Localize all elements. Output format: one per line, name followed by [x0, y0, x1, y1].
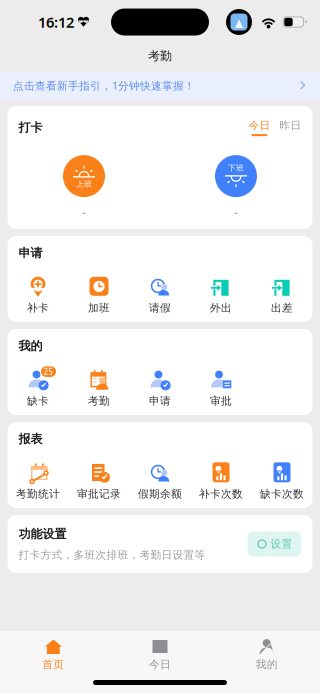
- staticText: 补卡: [27, 301, 49, 314]
- button[interactable]: 审批: [190, 367, 251, 407]
- button[interactable]: 申请: [129, 367, 190, 407]
- button[interactable]: 我的: [213, 638, 320, 671]
- button[interactable]: 昨日: [270, 119, 301, 136]
- button[interactable]: 补卡次数: [190, 460, 251, 500]
- button[interactable]: 缺卡次数: [251, 460, 312, 500]
- staticText: 请假: [149, 301, 171, 314]
- button[interactable]: 审批记录: [68, 460, 129, 500]
- button[interactable]: 考勤: [68, 367, 129, 407]
- staticText: 打卡方式，多班次排班，考勤日设置等: [18, 548, 205, 561]
- staticText: 外出: [210, 301, 232, 314]
- staticText: 考勤: [148, 49, 172, 63]
- button[interactable]: 设置: [247, 531, 301, 556]
- staticText: -: [234, 204, 238, 220]
- staticText: 点击查看新手指引，1分钟快速掌握！: [13, 78, 195, 93]
- staticText: 今日: [149, 658, 171, 671]
- staticText: 25: [43, 366, 53, 377]
- staticText: 昨日: [279, 119, 301, 132]
- staticText: 我的: [256, 658, 278, 671]
- staticText: 上班: [76, 179, 92, 189]
- staticText: 加班: [88, 301, 110, 314]
- button[interactable]: 假期余额: [129, 460, 190, 500]
- staticText: 申请: [149, 394, 171, 407]
- staticText: 补卡次数: [199, 487, 243, 500]
- button[interactable]: 上班: [63, 155, 105, 220]
- button[interactable]: 补卡: [7, 274, 68, 314]
- staticText: 下班: [228, 163, 244, 173]
- staticText: 考勤统计: [16, 487, 60, 500]
- staticText: 缺卡次数: [260, 487, 304, 500]
- staticText: 首页: [42, 658, 64, 671]
- staticText: 假期余额: [138, 487, 182, 500]
- staticText: -: [82, 204, 86, 220]
- staticText: 功能设置: [18, 527, 66, 541]
- button[interactable]: 外出: [190, 274, 251, 314]
- staticText: 出差: [271, 301, 293, 314]
- button[interactable]: 下班: [215, 155, 257, 220]
- staticText: 16:12: [38, 12, 74, 32]
- staticText: 报表: [18, 432, 42, 446]
- button[interactable]: 考勤统计: [7, 460, 68, 500]
- staticText: 申请: [18, 246, 42, 260]
- staticText: 审批记录: [77, 487, 121, 500]
- button[interactable]: 出差: [251, 274, 312, 314]
- button[interactable]: 首页: [0, 638, 107, 671]
- button[interactable]: 25: [7, 367, 68, 407]
- staticText: 设置: [270, 537, 292, 550]
- button[interactable]: 今日: [248, 119, 270, 136]
- staticText: 我的: [18, 339, 42, 353]
- button[interactable]: 请假: [129, 274, 190, 314]
- staticText: 审批: [210, 394, 232, 407]
- button[interactable]: 加班: [68, 274, 129, 314]
- staticText: 今日: [248, 119, 270, 132]
- staticText: 缺卡: [27, 394, 49, 407]
- button[interactable]: 今日: [107, 638, 213, 671]
- button[interactable]: 点击查看新手指引，1分钟快速掌握！: [0, 72, 320, 99]
- staticText: 考勤: [88, 394, 110, 407]
- staticText: 打卡: [18, 120, 42, 135]
